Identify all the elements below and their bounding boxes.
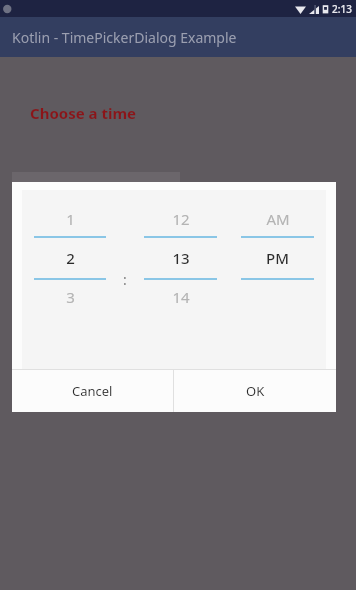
button[interactable]: 14 — [132, 280, 229, 314]
button[interactable]: 1 — [22, 202, 118, 236]
staticText: 14 — [172, 287, 190, 307]
staticText: 3 — [66, 287, 75, 307]
staticText: Kotlin - TimePickerDialog Example — [12, 28, 237, 47]
staticText: Cancel — [72, 382, 113, 400]
button[interactable]: PM — [229, 238, 326, 278]
staticText: OK — [246, 382, 265, 400]
button[interactable]: 2 — [22, 238, 118, 278]
button[interactable]: 12 — [132, 202, 229, 236]
staticText: Choose a time — [30, 103, 136, 123]
button[interactable]: 13 — [132, 238, 229, 278]
staticText: 2:13 — [332, 2, 352, 16]
staticText: AM — [266, 209, 290, 229]
staticText: 12 — [172, 209, 190, 229]
button[interactable]: AM — [229, 202, 326, 236]
staticText: 13 — [172, 248, 190, 268]
staticText: 1 — [66, 209, 75, 229]
staticText: 2 — [66, 248, 75, 268]
button[interactable]: 3 — [22, 280, 118, 314]
button[interactable]: OK — [174, 370, 336, 412]
button[interactable]: Cancel — [12, 370, 173, 412]
button[interactable] — [12, 172, 180, 206]
staticText: PM — [266, 248, 289, 268]
staticText: : — [123, 270, 127, 289]
